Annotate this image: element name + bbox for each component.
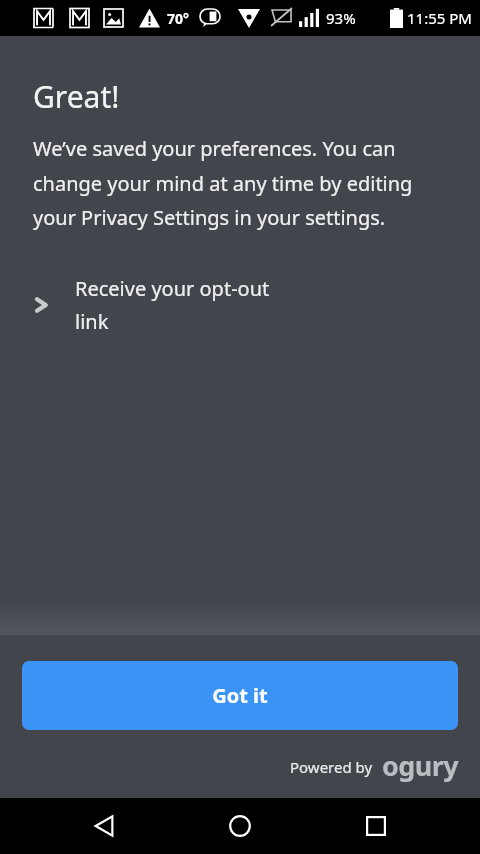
staticText: Got it [212, 682, 268, 709]
staticText: 11:55 PM [407, 8, 472, 28]
button[interactable]: Recent apps [344, 798, 408, 854]
staticText: ogury [382, 747, 458, 784]
staticText: Powered by [290, 757, 373, 777]
button[interactable]: Receive your opt-out link [0, 271, 480, 339]
staticText: 93% [326, 8, 356, 28]
staticText: Receive your opt-out link [75, 275, 270, 335]
staticText: Great! [33, 76, 120, 117]
staticText: We’ve saved your preferences. You can ch… [33, 135, 432, 231]
staticText: 70° [167, 9, 189, 28]
button[interactable]: Home [208, 798, 272, 854]
button[interactable]: Got it [22, 661, 458, 730]
button[interactable]: Back [72, 798, 136, 854]
